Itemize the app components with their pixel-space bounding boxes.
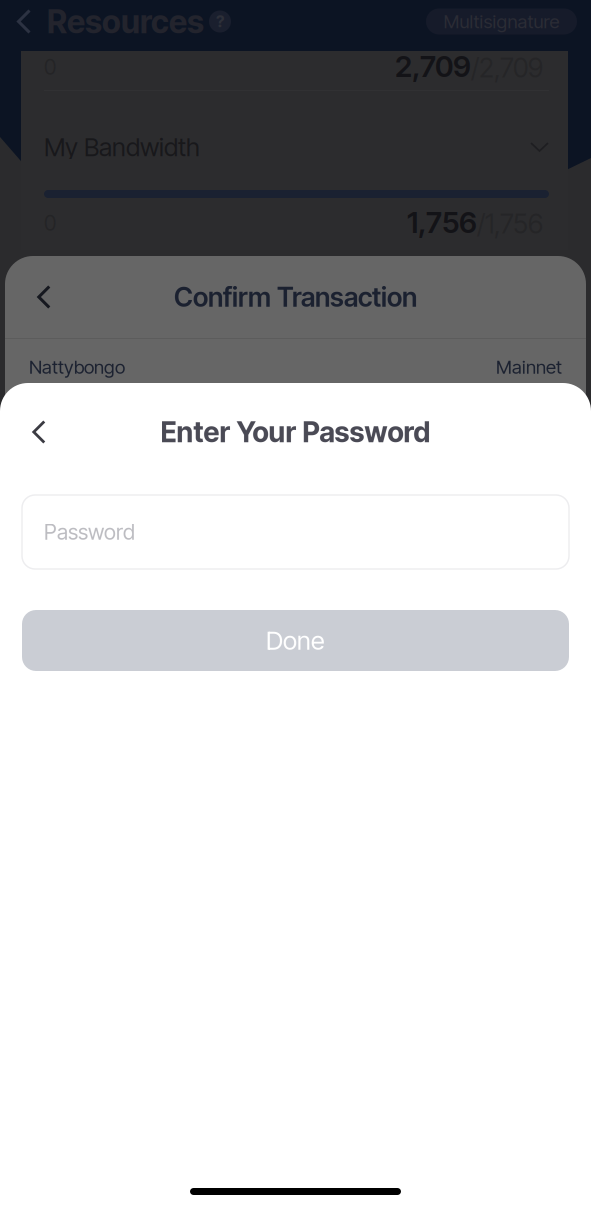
staticText: Confirm Transaction xyxy=(174,281,417,313)
staticText: Mainnet xyxy=(496,356,562,378)
button[interactable]: Back xyxy=(10,0,38,43)
button[interactable]: Password xyxy=(22,495,569,569)
button[interactable]: Done xyxy=(22,610,569,671)
button[interactable]: Multisignature xyxy=(426,8,577,34)
staticText: 2,709 xyxy=(395,48,471,84)
button[interactable]: Help xyxy=(209,10,231,32)
staticText: Nattybongo xyxy=(29,356,125,378)
staticText: Resources xyxy=(47,2,204,41)
staticText: Enter Your Password xyxy=(160,415,430,449)
button[interactable]: Back xyxy=(22,275,66,319)
staticText: Multisignature xyxy=(443,10,559,33)
staticText: My Bandwidth xyxy=(44,132,200,162)
staticText: Password xyxy=(44,519,135,545)
staticText: ? xyxy=(216,12,224,31)
staticText: Done xyxy=(266,625,325,656)
staticText: 1,756 xyxy=(407,204,477,240)
button[interactable]: Back xyxy=(17,410,61,454)
